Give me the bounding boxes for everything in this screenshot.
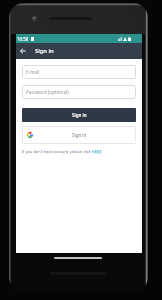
button[interactable]: E-mail	[22, 65, 136, 79]
staticText: E-mail	[26, 69, 40, 75]
button[interactable]: Password (optional)	[22, 85, 136, 99]
button[interactable]: Back	[16, 44, 30, 58]
staticText: 10:58	[17, 36, 29, 42]
button[interactable]: Sign in	[22, 126, 136, 144]
staticText: If you don't have account, please click	[22, 149, 92, 154]
button[interactable]: Sign in	[22, 108, 136, 122]
staticText: Sign in	[72, 132, 87, 138]
button[interactable]: HERE	[92, 149, 102, 154]
staticText: Sign in	[35, 47, 54, 55]
staticText: Sign in	[72, 112, 87, 118]
staticText: Password (optional)	[26, 89, 69, 95]
